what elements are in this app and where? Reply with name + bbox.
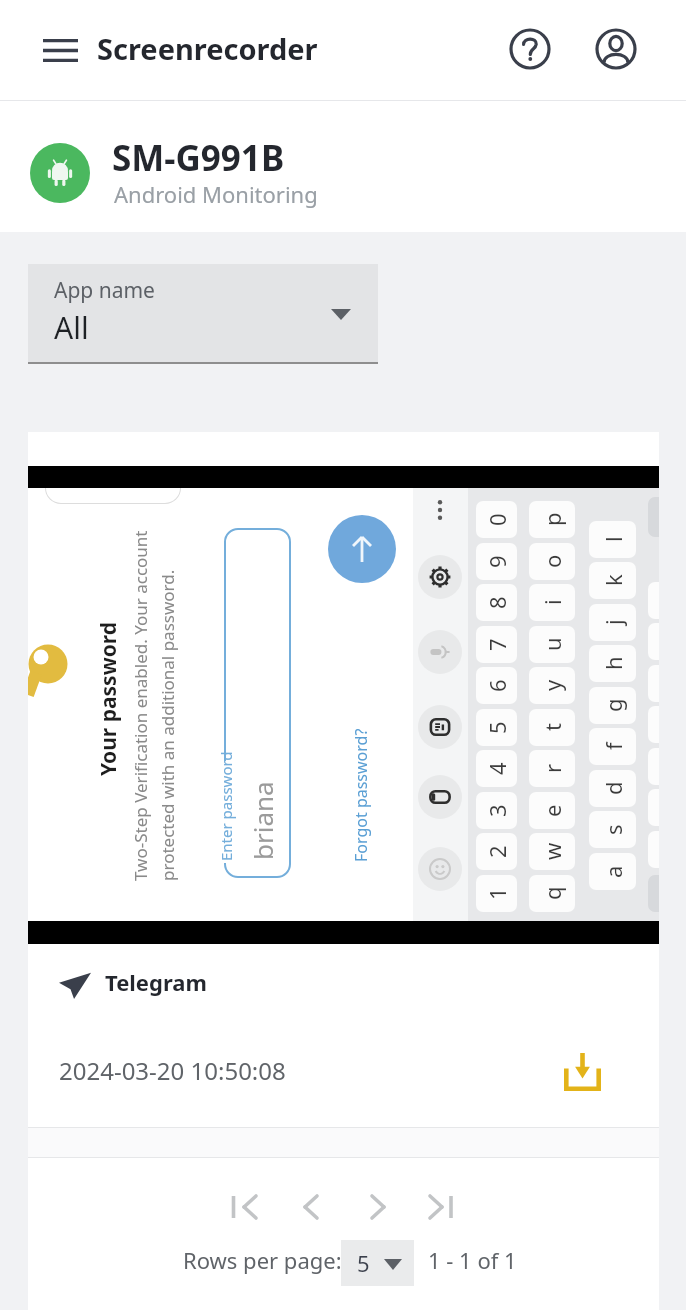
button[interactable]: Download bbox=[558, 1045, 606, 1097]
staticText: s bbox=[598, 824, 628, 835]
staticText: p bbox=[537, 512, 567, 526]
staticText: SM-G991B bbox=[112, 134, 285, 182]
staticText: 8 bbox=[482, 596, 512, 609]
staticText: Screenrecorder bbox=[97, 29, 318, 68]
button[interactable]: Last page bbox=[418, 1185, 462, 1229]
staticText: Android Monitoring bbox=[114, 179, 318, 209]
staticText: Forgot password? bbox=[350, 728, 372, 862]
staticText: i bbox=[537, 599, 567, 605]
staticText: e bbox=[537, 804, 567, 817]
button[interactable]: Next page bbox=[356, 1185, 400, 1229]
staticText: g bbox=[598, 698, 628, 712]
staticText: 6 bbox=[482, 679, 512, 692]
button[interactable]: Help bbox=[504, 23, 556, 75]
staticText: Enter password bbox=[216, 751, 236, 861]
staticText: Telegram bbox=[105, 967, 207, 997]
staticText: o bbox=[537, 554, 567, 568]
staticText: 7 bbox=[482, 638, 512, 651]
staticText: protected with an additional password. bbox=[156, 569, 179, 881]
staticText: Your password bbox=[94, 622, 123, 776]
staticText: u bbox=[537, 637, 567, 651]
staticText: h bbox=[598, 656, 628, 670]
staticText: App name bbox=[54, 276, 155, 305]
staticText: 0 bbox=[482, 513, 512, 526]
staticText: k bbox=[598, 574, 628, 586]
staticText: f bbox=[598, 742, 628, 750]
staticText: a bbox=[598, 865, 628, 878]
staticText: Two-Step Verification enabled. Your acco… bbox=[129, 521, 153, 881]
staticText: j bbox=[598, 619, 628, 625]
staticText: 2024-03-20 10:50:08 bbox=[59, 1054, 286, 1087]
staticText: briana bbox=[245, 781, 280, 860]
button[interactable]: App name bbox=[28, 264, 378, 362]
staticText: t bbox=[537, 723, 567, 731]
button[interactable]: First page bbox=[224, 1185, 268, 1229]
staticText: 1 bbox=[482, 887, 512, 900]
staticText: d bbox=[598, 781, 628, 795]
staticText: 1 - 1 of 1 bbox=[428, 1245, 517, 1275]
staticText: l bbox=[598, 536, 628, 542]
button[interactable]: Account bbox=[590, 23, 642, 75]
staticText: 3 bbox=[482, 804, 512, 817]
staticText: 9 bbox=[482, 555, 512, 568]
button[interactable]: Previous page bbox=[289, 1185, 333, 1229]
staticText: Rows per page: bbox=[183, 1245, 342, 1275]
button[interactable]: 5 bbox=[341, 1240, 414, 1286]
staticText: r bbox=[537, 763, 567, 773]
button[interactable]: Menu bbox=[30, 25, 90, 75]
staticText: 2 bbox=[482, 845, 512, 858]
staticText: All bbox=[54, 307, 89, 348]
staticText: 4 bbox=[482, 762, 512, 775]
staticText: 5 bbox=[357, 1248, 370, 1278]
staticText: 5 bbox=[482, 721, 512, 734]
staticText: w bbox=[537, 842, 567, 860]
staticText: y bbox=[537, 679, 567, 691]
staticText: q bbox=[537, 886, 567, 900]
